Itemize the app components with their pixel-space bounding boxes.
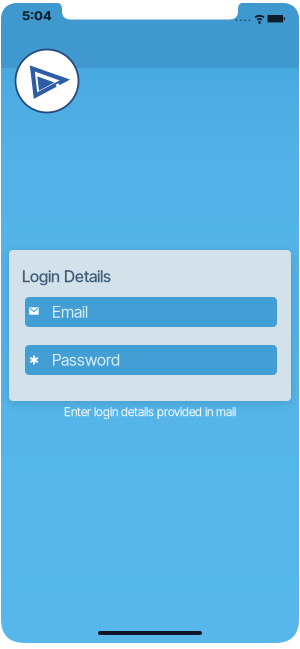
staticText: Email [52, 303, 88, 321]
staticText: Enter login details provided in mail [64, 405, 236, 419]
staticText: Password [52, 351, 120, 369]
staticText: 5:04 [22, 8, 52, 23]
staticText: Login Details [22, 267, 111, 286]
button[interactable]: Password [25, 345, 277, 375]
button[interactable]: Email [25, 297, 277, 327]
